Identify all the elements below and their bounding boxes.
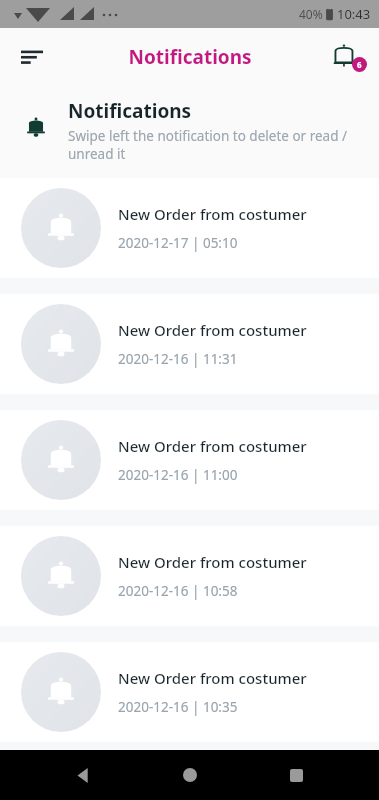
- staticText: Notifications: [128, 44, 252, 70]
- staticText: 2020-12-16 | 11:31: [118, 350, 238, 368]
- staticText: 10:43: [337, 5, 371, 23]
- button[interactable]: New Order from costumer: [0, 294, 379, 394]
- button[interactable]: New Order from costumer: [0, 642, 379, 742]
- staticText: New Order from costumer: [118, 204, 307, 224]
- staticText: 2020-12-16 | 11:00: [118, 466, 238, 484]
- button[interactable]: Home: [166, 751, 214, 799]
- button[interactable]: Menu: [8, 33, 56, 81]
- button[interactable]: Back: [59, 751, 107, 799]
- staticText: 6: [357, 59, 362, 70]
- button[interactable]: New Order from costumer: [0, 178, 379, 278]
- staticText: Notifications: [68, 98, 192, 124]
- button[interactable]: Recent apps: [272, 751, 320, 799]
- staticText: 2020-12-16 | 10:58: [118, 582, 238, 600]
- staticText: New Order from costumer: [118, 320, 307, 340]
- staticText: New Order from costumer: [118, 436, 307, 456]
- staticText: New Order from costumer: [118, 552, 307, 572]
- button[interactable]: Notifications, 6 new: [323, 34, 369, 80]
- staticText: Swipe left the notification to delete or…: [68, 127, 347, 163]
- button[interactable]: New Order from costumer: [0, 526, 379, 626]
- staticText: 2020-12-17 | 05:10: [118, 234, 238, 252]
- staticText: New Order from costumer: [118, 668, 307, 688]
- staticText: 2020-12-16 | 10:35: [118, 698, 238, 716]
- staticText: 40%: [299, 6, 323, 22]
- button[interactable]: New Order from costumer: [0, 410, 379, 510]
